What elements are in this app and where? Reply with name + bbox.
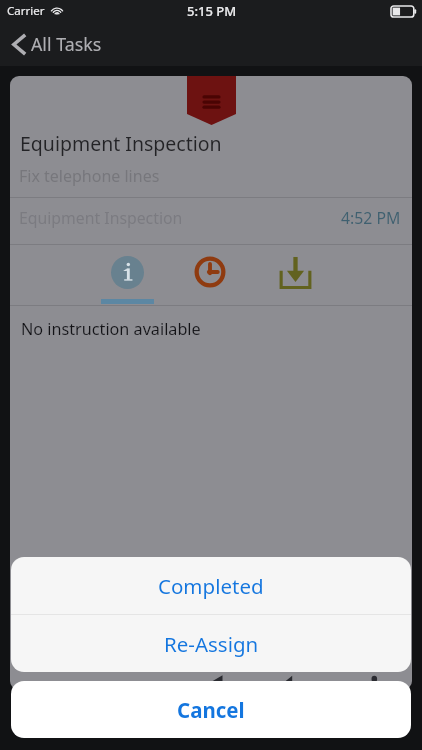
staticText: Completed <box>158 572 264 600</box>
button[interactable]: Completed <box>11 557 411 614</box>
button[interactable]: Information <box>101 245 154 304</box>
staticText: 5:15 PM <box>187 2 237 20</box>
staticText: Carrier <box>7 3 45 19</box>
button[interactable]: History <box>183 245 236 304</box>
button[interactable]: Re-Assign <box>11 615 411 672</box>
staticText: All Tasks <box>31 32 102 56</box>
button[interactable]: Download <box>269 245 322 304</box>
button[interactable]: Cancel <box>11 681 411 738</box>
staticText: Cancel <box>177 696 245 724</box>
staticText: Fix telephone lines <box>19 165 160 187</box>
staticText: No instruction available <box>21 318 201 340</box>
staticText: Re-Assign <box>164 630 259 658</box>
staticText: Equipment Inspection <box>20 130 222 157</box>
staticText: Equipment Inspection <box>19 207 183 229</box>
staticText: 4:52 PM <box>341 207 401 229</box>
button[interactable]: All Tasks <box>0 25 116 63</box>
